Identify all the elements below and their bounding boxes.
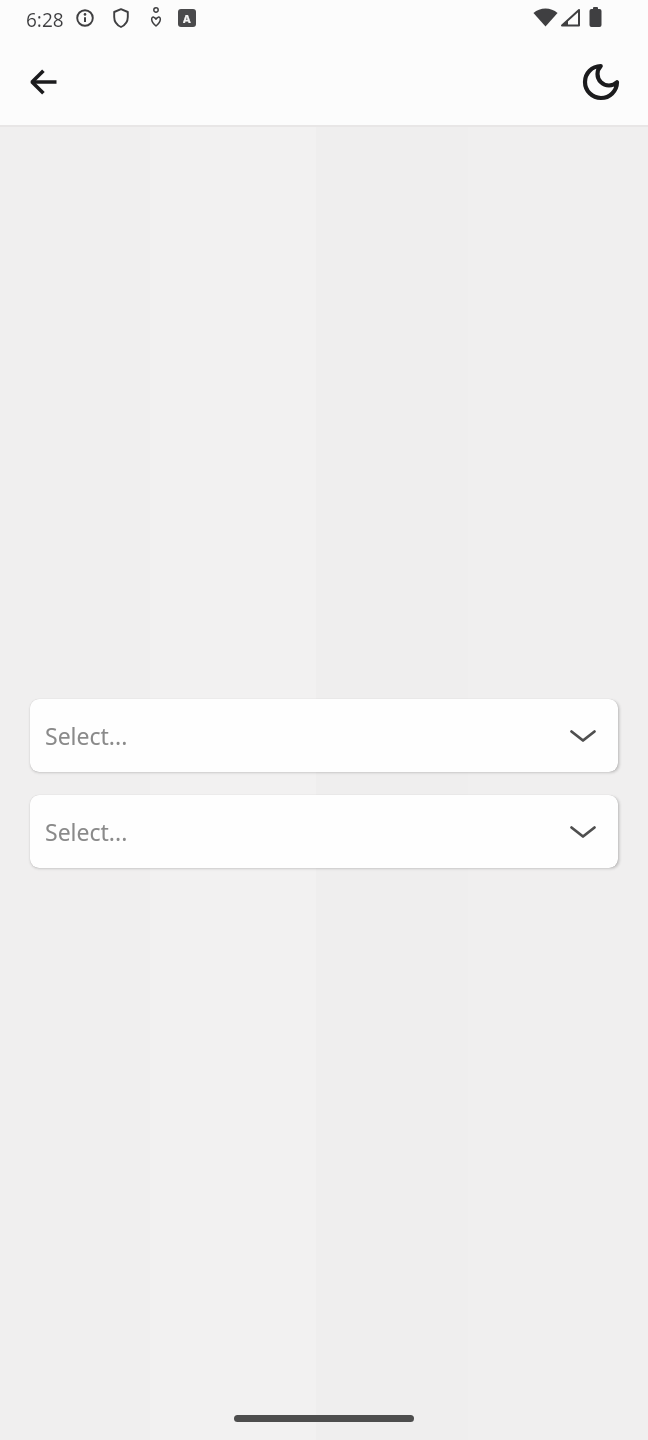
staticText: A bbox=[183, 11, 191, 26]
button[interactable] bbox=[20, 58, 68, 106]
staticText: Select... bbox=[45, 720, 128, 751]
button[interactable] bbox=[576, 58, 624, 106]
staticText: 6:28 bbox=[26, 7, 64, 33]
button[interactable]: Select... bbox=[30, 699, 618, 772]
button[interactable]: Select... bbox=[30, 795, 618, 868]
staticText: Select... bbox=[45, 816, 128, 847]
